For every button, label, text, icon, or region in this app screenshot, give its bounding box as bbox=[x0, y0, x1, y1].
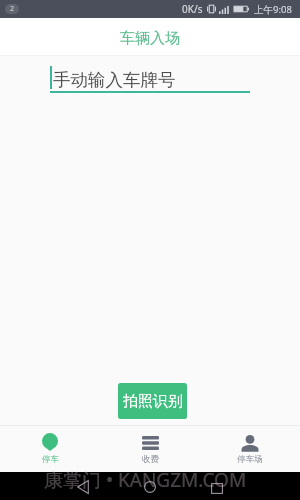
staticText: 康掌门 • KANGZM.COM bbox=[44, 467, 247, 493]
staticText: 2 bbox=[10, 4, 15, 14]
staticText: 车辆入场 bbox=[120, 29, 180, 48]
button[interactable]: Back bbox=[68, 472, 98, 500]
staticText: 收费 bbox=[142, 454, 159, 465]
staticText: 0K/s bbox=[182, 2, 203, 16]
staticText: 手动输入车牌号 bbox=[53, 69, 176, 91]
staticText: 停车场 bbox=[237, 454, 263, 465]
staticText: 拍照识别 bbox=[123, 392, 183, 411]
staticText: 停车 bbox=[42, 454, 59, 465]
button[interactable]: Recent apps bbox=[202, 472, 232, 500]
button[interactable]: Home bbox=[135, 472, 165, 500]
staticText: 上午9:08 bbox=[254, 3, 292, 16]
button[interactable]: 拍照识别 bbox=[118, 383, 187, 419]
button[interactable]: 停车场 bbox=[200, 426, 300, 472]
button[interactable]: 收费 bbox=[100, 426, 200, 472]
button[interactable]: 停车 bbox=[0, 426, 100, 472]
